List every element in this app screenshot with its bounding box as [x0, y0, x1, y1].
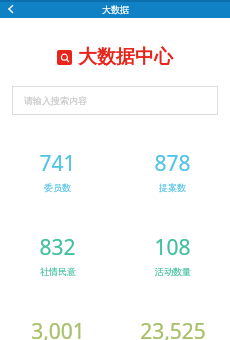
- staticText: 832: [39, 233, 76, 262]
- staticText: 大数据中心: [78, 45, 173, 69]
- staticText: 23,525: [140, 317, 206, 340]
- button[interactable]: 832: [0, 233, 115, 277]
- button[interactable]: 108: [115, 233, 230, 277]
- staticText: 社情民意: [40, 266, 76, 277]
- staticText: 委员数: [44, 182, 71, 193]
- button[interactable]: 23,525: [115, 317, 230, 340]
- staticText: 878: [154, 149, 191, 178]
- staticText: 请输入搜索内容: [24, 95, 87, 106]
- button[interactable]: 741: [0, 149, 115, 193]
- button[interactable]: Back: [0, 0, 22, 18]
- button[interactable]: 大数据中心: [0, 45, 230, 69]
- staticText: 108: [154, 233, 191, 262]
- button[interactable]: 请输入搜索内容: [12, 86, 218, 115]
- staticText: 3,001: [31, 317, 85, 340]
- button[interactable]: 878: [115, 149, 230, 193]
- staticText: 大数据: [102, 4, 129, 15]
- staticText: 提案数: [159, 182, 186, 193]
- staticText: 活动数量: [155, 266, 191, 277]
- button[interactable]: 3,001: [0, 317, 115, 340]
- staticText: 741: [39, 149, 76, 178]
